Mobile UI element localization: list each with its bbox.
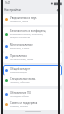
staticText: Приложения — [10, 54, 27, 58]
staticText: Общий аккаунт — [10, 67, 31, 71]
staticText: Обновление ПО — [10, 91, 31, 95]
button[interactable]: Общий аккаунт — [3, 65, 62, 76]
staticText: Справка, отзывы — [10, 105, 28, 108]
staticText: Безопасность и конфиденц. — [10, 29, 47, 33]
staticText: Специальные возм. — [10, 77, 36, 81]
staticText: Настройки — [4, 8, 21, 12]
button[interactable]: Советы и поддержка — [3, 99, 62, 110]
staticText: Уведомления и звук — [10, 16, 37, 20]
staticText: Громкость, звуки — [10, 20, 29, 23]
staticText: Последнее обнов. — [10, 95, 30, 98]
button[interactable]: Search — [55, 7, 61, 13]
button[interactable]: Уведомления и звук — [3, 14, 62, 25]
button[interactable]: Безопасность и конфиденц. — [3, 27, 62, 41]
button[interactable]: Обновление ПО — [3, 89, 62, 100]
staticText: Местоположение — [10, 43, 33, 47]
staticText: По умолчанию, права — [10, 58, 34, 61]
staticText: Синхронизация — [10, 71, 27, 74]
staticText: Советы и поддержка — [10, 101, 38, 105]
staticText: Читалка, субтитры — [10, 81, 30, 84]
button[interactable]: Специальные возм. — [3, 75, 62, 86]
staticText: Блокировка экрана, отпечатки, защита уст… — [10, 33, 44, 39]
button[interactable]: Местоположение — [3, 41, 62, 52]
staticText: Включено, 3 прил. — [10, 47, 30, 50]
staticText: 9:41 — [5, 1, 11, 5]
button[interactable]: Приложения — [3, 52, 62, 63]
